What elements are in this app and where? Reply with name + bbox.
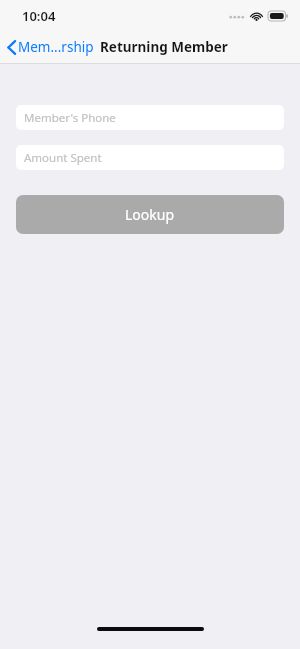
button[interactable]: Amount Spent xyxy=(16,145,284,170)
button[interactable]: Back xyxy=(0,34,100,60)
staticText: Amount Spent xyxy=(24,150,102,166)
staticText: Mem...rship xyxy=(18,38,94,56)
other: Back xyxy=(7,40,16,55)
staticText: Member's Phone xyxy=(24,110,116,126)
staticText: Returning Member xyxy=(100,38,228,56)
staticText: 10:04 xyxy=(22,7,56,25)
button[interactable]: Member's Phone xyxy=(16,105,284,130)
staticText: Lookup xyxy=(125,205,175,224)
button[interactable]: Lookup xyxy=(16,195,284,234)
